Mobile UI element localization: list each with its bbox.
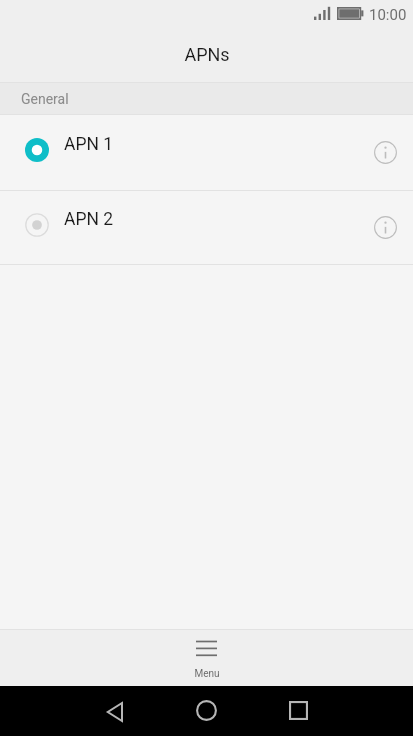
button[interactable]: Menu xyxy=(0,630,413,686)
staticText: APNs xyxy=(184,44,230,65)
button[interactable]: APN 1 xyxy=(0,115,413,190)
button[interactable]: Recents xyxy=(276,688,321,733)
button[interactable]: Home xyxy=(184,688,229,733)
staticText: Menu xyxy=(194,668,220,680)
button[interactable]: About APN 2 xyxy=(366,208,404,246)
button[interactable]: Back xyxy=(92,689,137,734)
staticText: 10:00 xyxy=(369,6,407,24)
button[interactable]: APN 2 xyxy=(0,190,413,264)
staticText: APN 1 xyxy=(64,134,114,155)
button[interactable]: About APN 1 xyxy=(366,133,404,171)
staticText: General xyxy=(21,91,69,107)
staticText: APN 2 xyxy=(64,209,114,230)
